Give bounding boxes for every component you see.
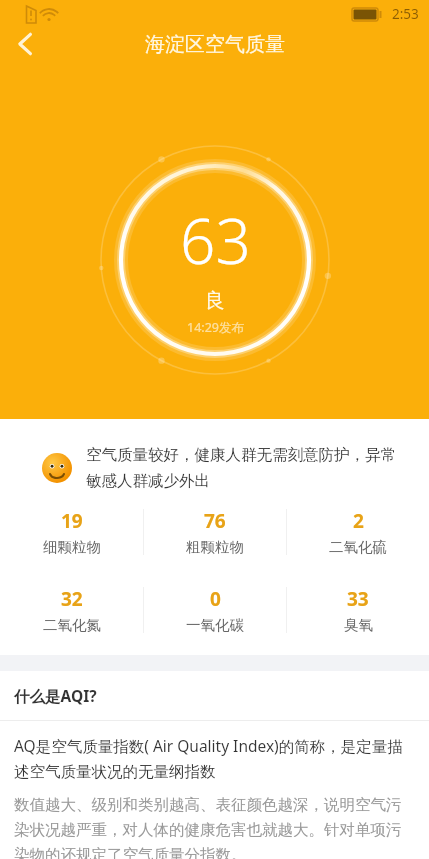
staticText: 粗颗粒物: [186, 538, 244, 556]
staticText: 14:29发布: [187, 319, 244, 336]
button[interactable]: Back: [4, 22, 48, 66]
staticText: 空气质量较好，健康人群无需刻意防护，异常敏感人群减少外出: [86, 445, 403, 491]
staticText: 数值越大、级别和类别越高、表征颜色越深，说明空气污染状况越严重，对人体的健康危害…: [14, 795, 415, 859]
button[interactable]: 32: [0, 579, 143, 641]
staticText: 2: [353, 508, 364, 534]
staticText: 二氧化氮: [43, 616, 101, 634]
staticText: 32: [61, 586, 83, 612]
staticText: 海淀区空气质量: [145, 32, 285, 57]
staticText: 臭氧: [344, 616, 373, 634]
button[interactable]: 0: [144, 579, 286, 641]
staticText: 0: [210, 586, 221, 612]
staticText: 19: [61, 508, 83, 534]
staticText: 63: [180, 198, 251, 282]
staticText: 什么是AQI?: [14, 685, 97, 706]
staticText: AQ是空气质量指数( Air Quality Index)的简称，是定量描述空气…: [14, 735, 415, 781]
staticText: 2:53: [392, 5, 419, 23]
staticText: 一氧化碳: [186, 616, 244, 634]
button[interactable]: 19: [0, 501, 143, 563]
staticText: 76: [204, 508, 226, 534]
staticText: 二氧化硫: [329, 538, 387, 556]
staticText: 33: [347, 586, 369, 612]
button[interactable]: 空气质量较好，健康人群无需刻意防护，异常敏感人群减少外出: [0, 419, 429, 491]
button[interactable]: 2: [287, 501, 429, 563]
staticText: 良: [205, 288, 225, 313]
button[interactable]: 什么是AQI?: [0, 671, 429, 720]
button[interactable]: 33: [287, 579, 429, 641]
button[interactable]: 76: [144, 501, 286, 563]
staticText: 细颗粒物: [43, 538, 101, 556]
